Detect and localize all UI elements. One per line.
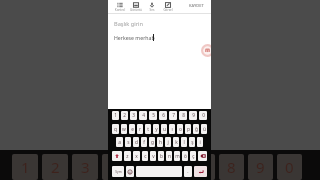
button[interactable]: x — [133, 151, 140, 161]
staticText: f — [143, 139, 145, 146]
button[interactable]: k — [173, 137, 179, 147]
staticText: c — [144, 153, 147, 160]
staticText: s — [127, 139, 130, 146]
button[interactable]: Görsel — [160, 0, 176, 12]
button[interactable]: Sym — [112, 166, 124, 177]
staticText: ç — [192, 153, 195, 160]
staticText: 1 — [21, 157, 30, 177]
staticText: 5 — [152, 112, 155, 119]
staticText: m — [175, 153, 180, 160]
button[interactable]: Enter — [194, 166, 207, 177]
staticText: p — [187, 126, 190, 133]
button[interactable]: r — [137, 124, 143, 134]
staticText: t — [147, 126, 149, 133]
staticText: b — [160, 153, 163, 160]
staticText: 9 — [192, 112, 195, 119]
staticText: i — [199, 139, 201, 146]
staticText: . — [187, 168, 189, 175]
button[interactable]: n — [166, 151, 172, 161]
button[interactable]: p — [185, 124, 191, 134]
button[interactable]: ş — [189, 137, 195, 147]
button[interactable]: 6 — [159, 111, 167, 120]
button[interactable]: 4 — [139, 111, 147, 120]
button[interactable]: Shift — [112, 151, 122, 161]
button[interactable] — [136, 166, 182, 177]
button[interactable]: i — [197, 137, 203, 147]
button[interactable]: 3 — [130, 111, 137, 120]
staticText: u — [163, 126, 166, 133]
button[interactable]: g — [149, 137, 155, 147]
button[interactable]: Emoji — [126, 166, 134, 177]
button[interactable]: d — [133, 137, 139, 147]
staticText: 0 — [202, 112, 205, 119]
button[interactable]: 9 — [189, 111, 197, 120]
button[interactable]: Kontrol — [112, 0, 128, 12]
button[interactable]: KAYDET — [186, 0, 207, 11]
button[interactable]: o — [177, 124, 183, 134]
staticText: a — [118, 139, 121, 146]
staticText: o — [179, 126, 182, 133]
staticText: v — [152, 153, 155, 160]
button[interactable]: 5 — [149, 111, 157, 120]
staticText: ı — [171, 126, 173, 133]
button[interactable]: f — [141, 137, 147, 147]
staticText: e — [131, 126, 134, 133]
staticText: 2 — [123, 112, 126, 119]
button[interactable]: c — [142, 151, 148, 161]
button[interactable]: m — [174, 151, 180, 161]
button[interactable]: h — [157, 137, 163, 147]
button[interactable]: Backspace — [198, 151, 207, 161]
staticText: ğ — [195, 126, 198, 133]
button[interactable]: w — [121, 124, 127, 134]
button[interactable]: l — [181, 137, 187, 147]
button[interactable]: ı — [169, 124, 175, 134]
staticText: 0 — [285, 157, 294, 177]
button[interactable]: s — [125, 137, 131, 147]
staticText: 6 — [162, 112, 165, 119]
button[interactable]: ü — [201, 124, 207, 134]
staticText: ş — [191, 139, 194, 146]
button[interactable]: 8 — [179, 111, 187, 120]
button[interactable]: b — [158, 151, 164, 161]
button[interactable]: . — [184, 166, 192, 177]
button[interactable]: ğ — [193, 124, 199, 134]
staticText: 8 — [182, 112, 185, 119]
button[interactable]: 1 — [112, 111, 119, 120]
staticText: k — [175, 139, 178, 146]
staticText: Başlık girin — [114, 20, 143, 28]
staticText: 1 — [114, 112, 117, 119]
staticText: 4 — [142, 112, 145, 119]
button[interactable]: j — [165, 137, 171, 147]
staticText: Sym — [115, 170, 122, 174]
button[interactable]: y — [153, 124, 159, 134]
button[interactable]: v — [150, 151, 156, 161]
staticText: j — [167, 139, 169, 146]
staticText: 2 — [51, 157, 60, 177]
staticText: l — [183, 139, 185, 146]
staticText: g — [151, 139, 154, 146]
button[interactable]: Görüntü — [128, 0, 144, 12]
button[interactable]: 0 — [199, 111, 207, 120]
staticText: z — [126, 153, 129, 160]
staticText: Görüntü — [128, 8, 144, 12]
button[interactable]: 7 — [169, 111, 177, 120]
staticText: y — [155, 126, 158, 133]
button[interactable]: ç — [190, 151, 196, 161]
button[interactable]: u — [161, 124, 167, 134]
button[interactable]: q — [112, 124, 119, 134]
staticText: r — [139, 126, 141, 133]
button[interactable]: Ses — [144, 0, 160, 12]
staticText: w — [122, 126, 126, 133]
staticText: 6 — [169, 157, 178, 177]
button[interactable]: Yeni not — [201, 44, 211, 57]
staticText: 5 — [140, 157, 149, 177]
button[interactable]: ö — [182, 151, 188, 161]
staticText: ö — [184, 153, 187, 160]
button[interactable]: z — [124, 151, 131, 161]
button[interactable]: t — [145, 124, 151, 134]
button[interactable]: a — [116, 137, 123, 147]
staticText: d — [135, 139, 138, 146]
button[interactable]: e — [129, 124, 135, 134]
button[interactable]: 2 — [121, 111, 128, 120]
staticText: 7 — [198, 157, 207, 177]
